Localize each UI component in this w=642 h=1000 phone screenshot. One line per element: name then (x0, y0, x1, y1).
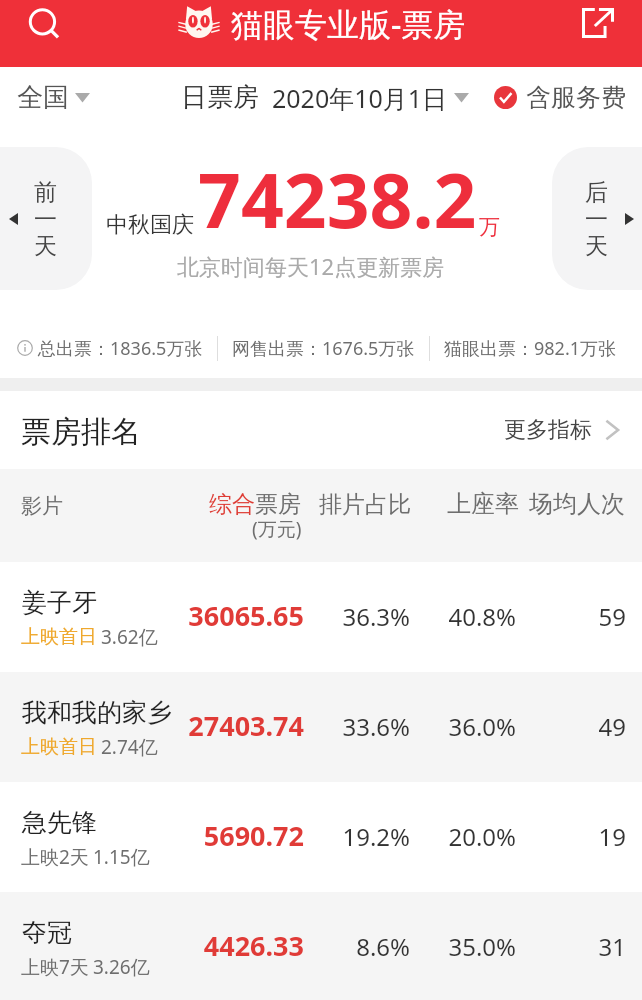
staticText: 中秋国庆 (106, 211, 194, 239)
staticText: 49 (545, 710, 626, 743)
button[interactable]: 全国 (17, 67, 90, 128)
staticText: 上座率 (447, 489, 519, 519)
staticText: 1.15亿 (93, 844, 150, 870)
button[interactable]: 日票房 (181, 67, 259, 128)
staticText: 票房排名 (21, 413, 141, 451)
staticText: 35.0% (435, 930, 516, 963)
staticText: 36065.65 (163, 597, 304, 634)
button[interactable]: Search (21, 2, 69, 48)
staticText: 3.62亿 (101, 624, 158, 650)
staticText: 排片占比 (319, 490, 411, 519)
button[interactable]: 2020年10月1日 (272, 67, 469, 128)
staticText: 74238.2 (198, 148, 477, 250)
button[interactable]: 急先锋 (0, 782, 642, 892)
staticText: 上映首日 (21, 625, 97, 649)
staticText: 27403.74 (163, 707, 304, 744)
staticText: 含服务费 (526, 82, 626, 113)
staticText: 上映7天 (21, 954, 89, 980)
staticText: 2020年10月1日 (272, 81, 448, 115)
button[interactable]: 姜子牙 (0, 562, 642, 672)
staticText: 上映首日 (21, 735, 97, 759)
staticText: 影片 (21, 493, 63, 519)
staticText: 19.2% (329, 820, 410, 853)
staticText: 急先锋 (22, 807, 97, 838)
staticText: 上映2天 (21, 844, 89, 870)
staticText: 网售出票：1676.5万张 (232, 336, 415, 361)
staticText: 天 (585, 232, 608, 261)
staticText: 综合 (209, 490, 255, 519)
staticText: 8.6% (329, 930, 410, 963)
staticText: 万 (479, 214, 500, 240)
button[interactable]: Next day (552, 147, 642, 290)
staticText: 3.26亿 (93, 954, 150, 980)
staticText: 总出票：1836.5万张 (38, 336, 203, 361)
staticText: 天 (34, 232, 57, 261)
staticText: 场均人次 (529, 489, 625, 519)
button[interactable]: 更多指标 (495, 401, 620, 459)
staticText: 猫眼出票：982.1万张 (444, 336, 617, 361)
staticText: 北京时间每天12点更新票房 (177, 251, 445, 281)
staticText: 姜子牙 (22, 587, 97, 618)
button[interactable]: 我和我的家乡 (0, 672, 642, 782)
staticText: 40.8% (435, 600, 516, 633)
button[interactable]: Share (574, 0, 622, 46)
staticText: 票房 (255, 490, 301, 519)
staticText: 4426.33 (163, 927, 304, 964)
button[interactable]: 夺冠 (0, 892, 642, 1000)
staticText: 我和我的家乡 (22, 697, 172, 728)
button[interactable]: 含服务费 (494, 67, 626, 128)
button[interactable]: Previous day (0, 147, 92, 290)
staticText: 5690.72 (163, 817, 304, 854)
staticText: 一 (34, 205, 57, 234)
staticText: 19 (545, 820, 626, 853)
staticText: 2.74亿 (101, 734, 158, 760)
staticText: 更多指标 (504, 416, 592, 444)
staticText: 前 (34, 178, 57, 207)
staticText: 夺冠 (22, 917, 72, 948)
staticText: 33.6% (329, 710, 410, 743)
staticText: 后 (585, 178, 608, 207)
staticText: (万元) (252, 516, 302, 542)
staticText: 31 (545, 930, 626, 963)
staticText: 一 (585, 205, 608, 234)
staticText: 全国 (17, 81, 69, 114)
staticText: 36.0% (435, 710, 516, 743)
staticText: 59 (545, 600, 626, 633)
staticText: 日票房 (181, 81, 259, 114)
staticText: 猫眼专业版-票房 (231, 2, 466, 46)
staticText: 20.0% (435, 820, 516, 853)
staticText: 36.3% (329, 600, 410, 633)
